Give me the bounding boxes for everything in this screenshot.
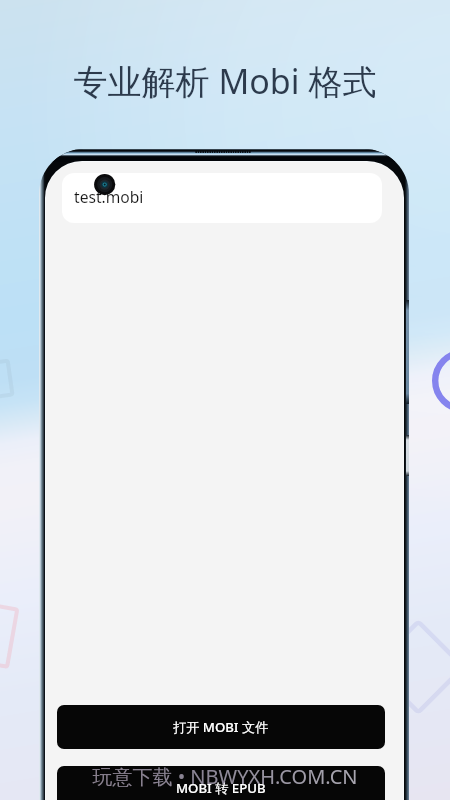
- staticText: 专业解析 Mobi 格式: [0, 58, 450, 104]
- staticText: 打开 MOBI 文件: [173, 718, 269, 736]
- staticText: MOBI 转 EPUB: [176, 779, 266, 797]
- button[interactable]: 打开 MOBI 文件: [57, 705, 385, 749]
- staticText: test.mobi: [74, 186, 144, 207]
- staticText: 玩意下载 • NBWYXH.COM.CN: [0, 763, 450, 790]
- button[interactable]: test.mobi: [62, 173, 382, 223]
- button[interactable]: MOBI 转 EPUB: [57, 766, 385, 800]
